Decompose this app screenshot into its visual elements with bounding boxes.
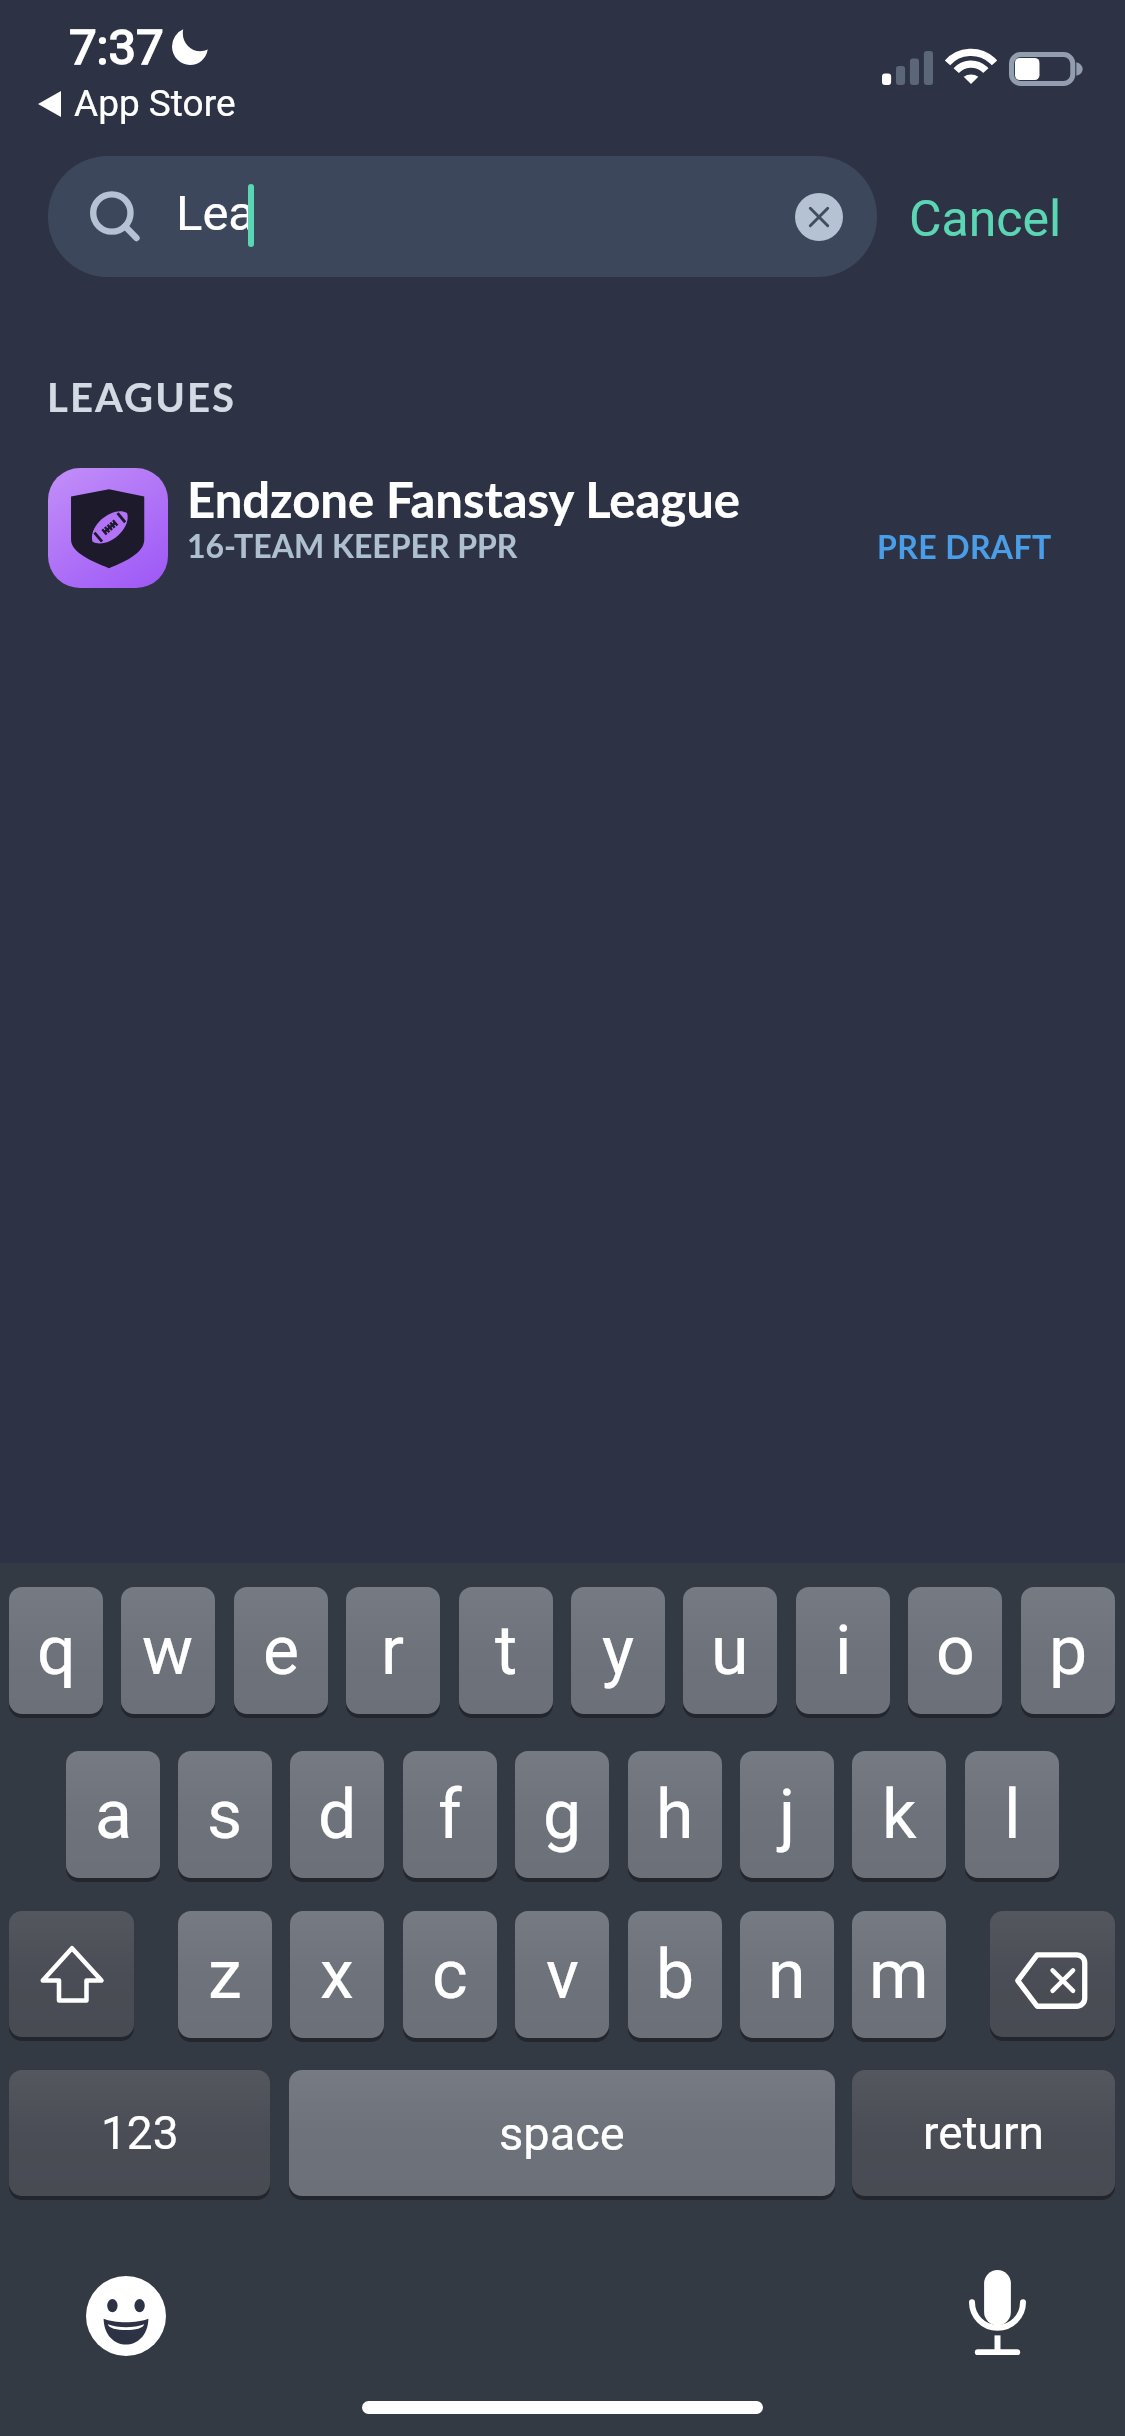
staticText: 123 [101,2106,179,2160]
staticText: x [320,1935,354,2015]
staticText: Cancel [909,190,1062,249]
button[interactable]: d [290,1751,384,1878]
staticText: w [142,1611,194,1691]
button[interactable]: w [121,1587,215,1714]
staticText: z [208,1935,242,2015]
staticText: p [1049,1611,1088,1691]
staticText: s [207,1775,243,1855]
button[interactable]: c [403,1911,497,2038]
button[interactable]: q [9,1587,103,1714]
button[interactable]: b [628,1911,722,2038]
button[interactable]: o [908,1587,1002,1714]
button[interactable]: Cancel [909,190,1062,249]
staticText: h [656,1775,694,1855]
button[interactable]: n [740,1911,834,2038]
staticText: r [381,1611,405,1691]
staticText: f [438,1775,462,1855]
button[interactable]: r [346,1587,440,1714]
staticText: Endzone Fanstasy League [187,470,741,529]
staticText: i [835,1611,852,1691]
staticText: return [923,2106,1044,2160]
button[interactable]: Lea [48,156,877,277]
staticText: l [1004,1775,1021,1855]
staticText: PRE DRAFT [877,527,1052,565]
staticText: g [543,1775,582,1855]
staticText: LEAGUES [47,373,237,421]
button[interactable]: h [628,1751,722,1878]
staticText: n [768,1935,806,2015]
button[interactable]: Shift [9,1911,134,2037]
staticText: 16-TEAM KEEPER PPR [187,526,518,564]
staticText: k [882,1775,917,1855]
button[interactable]: x [290,1911,384,2038]
button[interactable]: Endzone Fanstasy League [0,455,1125,601]
staticText: y [602,1611,635,1691]
button[interactable]: g [515,1751,609,1878]
staticText: a [95,1775,132,1855]
button[interactable]: y [571,1587,665,1714]
staticText: m [869,1935,929,2015]
button[interactable]: l [965,1751,1059,1878]
button[interactable]: Dictation [969,2270,1026,2356]
button[interactable]: App Store [38,82,236,125]
staticText: t [495,1611,518,1691]
staticText: App Store [74,82,236,125]
button[interactable]: t [459,1587,553,1714]
button[interactable]: k [852,1751,946,1878]
staticText: 7:37 [69,19,164,76]
button[interactable]: f [403,1751,497,1878]
button[interactable]: Emoji keyboard [86,2276,166,2356]
staticText: j [779,1775,796,1855]
staticText: o [936,1611,975,1691]
button[interactable]: 123 [9,2070,270,2196]
button[interactable]: m [852,1911,946,2038]
button[interactable]: s [178,1751,272,1878]
staticText: c [432,1935,468,2015]
staticText: Lea [176,185,256,242]
button[interactable]: space [289,2070,835,2196]
staticText: e [263,1611,300,1691]
button[interactable]: j [740,1751,834,1878]
staticText: u [711,1611,749,1691]
button[interactable]: i [796,1587,890,1714]
button[interactable]: return [852,2070,1115,2196]
button[interactable]: z [178,1911,272,2038]
button[interactable]: Backspace [990,1911,1115,2037]
button[interactable]: Clear text [795,193,843,241]
button[interactable]: p [1021,1587,1115,1714]
staticText: d [318,1775,357,1855]
button[interactable]: a [66,1751,160,1878]
button[interactable]: u [683,1587,777,1714]
staticText: v [546,1935,579,2015]
staticText: b [656,1935,695,2015]
button[interactable]: v [515,1911,609,2038]
staticText: q [37,1611,76,1691]
button[interactable]: e [234,1587,328,1714]
staticText: space [499,2106,625,2161]
